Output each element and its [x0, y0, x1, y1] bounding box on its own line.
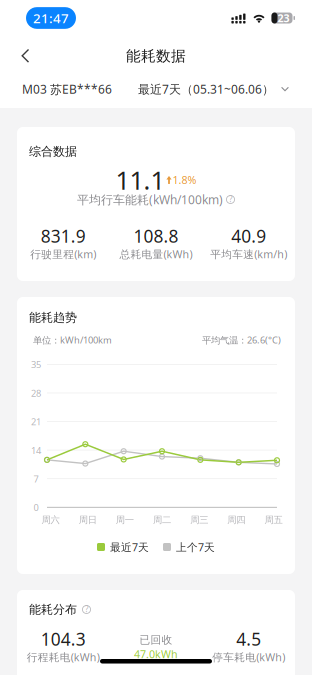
staticText: 23	[277, 11, 289, 25]
staticText: 40.9	[231, 224, 266, 247]
staticText: 21	[31, 415, 41, 428]
staticText: 4.5	[236, 627, 261, 650]
staticText: 周二	[153, 514, 171, 526]
button[interactable]: Back	[9, 38, 42, 73]
staticText: 11.1	[115, 163, 164, 197]
staticText: 108.8	[133, 224, 178, 247]
staticText: 7	[33, 473, 38, 485]
staticText: 周一	[116, 514, 134, 526]
staticText: 1.8%	[173, 173, 197, 187]
staticText: ?	[229, 194, 232, 204]
staticText: 能耗数据	[126, 47, 186, 65]
staticText: 单位：kWh/100km	[33, 334, 112, 346]
staticText: 行程耗电(kWh)	[27, 650, 100, 664]
button[interactable]: 最近7天（05.31~06.06）	[138, 75, 289, 103]
staticText: 平均气温：26.6(°C)	[202, 334, 281, 346]
staticText: 综合数据	[29, 144, 77, 159]
staticText: 104.3	[41, 627, 86, 650]
staticText: 周六	[42, 514, 60, 526]
staticText: 0	[33, 501, 38, 514]
staticText: 已回收	[139, 633, 172, 646]
staticText: 行驶里程(km)	[30, 247, 96, 261]
staticText: 周五	[264, 514, 282, 526]
staticText: 能耗趋势	[29, 310, 77, 325]
staticText: M03 苏EB***66	[22, 81, 112, 97]
staticText: 14	[31, 444, 41, 456]
button[interactable]: M03 苏EB***66	[22, 75, 112, 103]
staticText: 平均车速(km/h)	[210, 247, 287, 261]
staticText: 上个7天	[176, 540, 215, 554]
staticText: ?	[85, 604, 88, 614]
staticText: 周四	[227, 514, 245, 526]
staticText: 21:47	[33, 9, 69, 27]
staticText: 35	[31, 358, 41, 371]
staticText: 28	[31, 387, 41, 399]
staticText: 最近7天	[110, 540, 149, 554]
staticText: 831.9	[41, 224, 86, 247]
staticText: 平均行车能耗(kWh/100km)	[77, 191, 223, 207]
staticText: 47.0kWh	[134, 647, 178, 661]
staticText: 停车耗电(kWh)	[212, 650, 285, 664]
staticText: 周日	[79, 514, 97, 526]
staticText: 能耗分布	[29, 602, 77, 617]
staticText: 周三	[190, 514, 208, 526]
staticText: 最近7天（05.31~06.06）	[138, 81, 274, 97]
staticText: 总耗电量(kWh)	[119, 247, 192, 261]
